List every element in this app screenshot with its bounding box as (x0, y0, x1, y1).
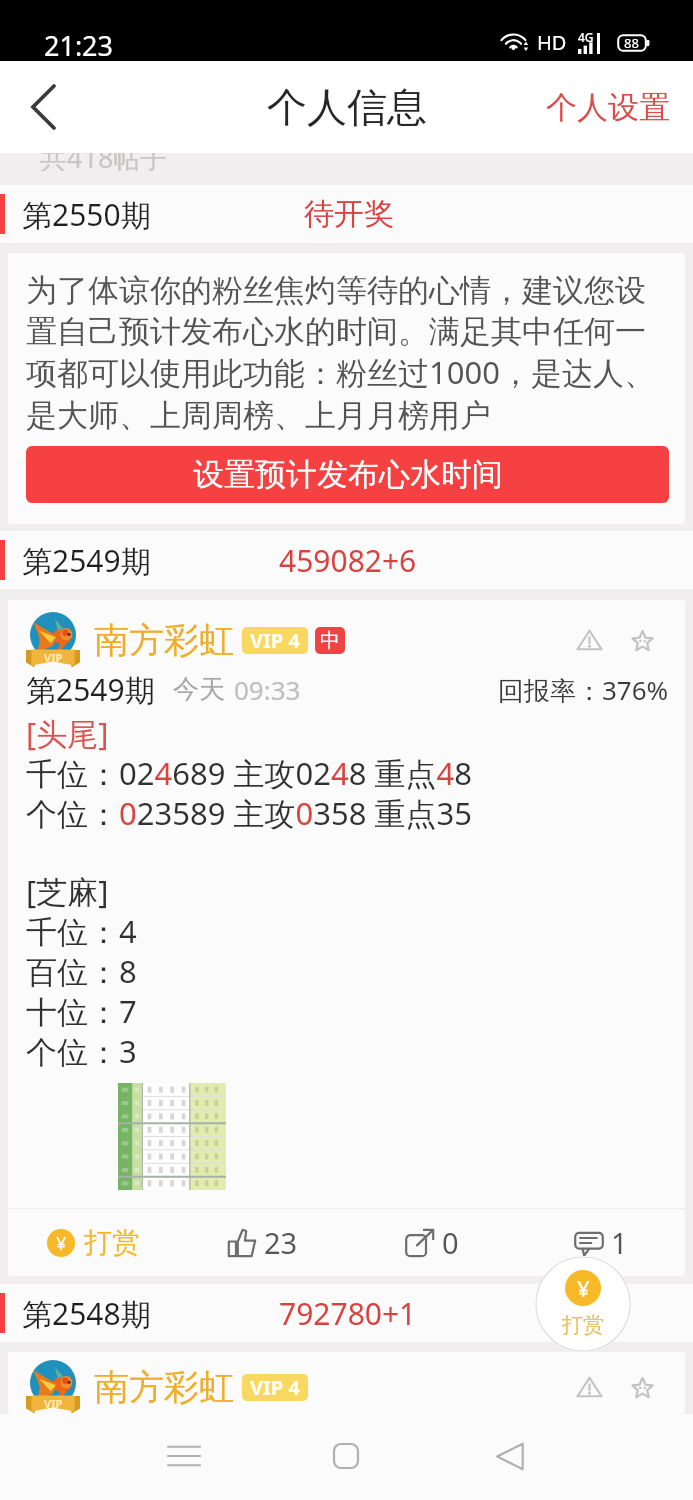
staticText: 21:23 (44, 27, 114, 64)
staticText: 第2549期 (26, 669, 155, 710)
staticText: 第2550期 (22, 194, 151, 235)
staticText: 待开奖 (304, 195, 394, 233)
staticText: 第2549期 (22, 540, 151, 581)
staticText: 打赏 (562, 1312, 604, 1338)
button[interactable]: 打赏 Reward (535, 1256, 631, 1352)
staticText: 23 (264, 1223, 298, 1262)
staticText: 为了体谅你的粉丝焦灼等待的心情，建议您设置自己预计发布心水的时间。满足其中任何一… (26, 271, 669, 435)
staticText: 个人设置 (546, 88, 670, 127)
staticText: VIP 4 (250, 1374, 300, 1401)
staticText: 个人信息 (267, 82, 427, 132)
button[interactable]: Favorite (618, 616, 666, 664)
button[interactable]: ¥ (8, 1209, 178, 1276)
staticText: VIP 4 (250, 627, 300, 654)
staticText: 88 (624, 34, 639, 52)
staticText: 1 (611, 1223, 628, 1262)
button[interactable]: Home (306, 1414, 386, 1500)
staticText: ¥ (577, 1273, 590, 1303)
staticText: 0 (442, 1223, 459, 1262)
staticText: 南方彩虹 (94, 618, 234, 662)
staticText: 打赏 (84, 1225, 140, 1260)
button[interactable]: 第2548期 (0, 1284, 693, 1342)
button[interactable]: Report (565, 616, 613, 664)
staticText: 4G (578, 29, 594, 45)
staticText: 南方彩虹 (94, 1365, 234, 1409)
button[interactable]: Report (565, 1363, 613, 1411)
staticText: 09:33 (234, 672, 301, 707)
staticText: HD (537, 29, 567, 56)
staticText: [芝麻] 千位：4 百位：8 十位：7 个位：3 (26, 870, 137, 1072)
staticText: 共418帖子 (40, 153, 168, 171)
staticText: 今天 (173, 673, 225, 706)
button[interactable]: Favorite (618, 1363, 666, 1411)
staticText: 792780+1 (279, 1293, 417, 1334)
button[interactable]: 第2550期 (0, 185, 693, 243)
button[interactable]: 1 (516, 1209, 685, 1276)
button[interactable]: 设置预计发布心水时间 (26, 446, 669, 503)
staticText: VIP (44, 1396, 63, 1411)
staticText: VIP (44, 650, 63, 665)
button[interactable]: 个人设置 (523, 61, 693, 153)
button[interactable]: 23 (178, 1209, 347, 1276)
staticText: [头尾] 千位：024689 主攻0248 重点48 个位：023589 主攻0… (26, 712, 472, 834)
staticText: ¥ (56, 1231, 67, 1256)
staticText: 设置预计发布心水时间 (193, 455, 503, 494)
staticText: 回报率：376% (498, 672, 669, 708)
staticText: 第2548期 (22, 1293, 151, 1334)
staticText: 459082+6 (279, 540, 417, 581)
button[interactable]: Back (0, 61, 86, 153)
button[interactable]: 0 (347, 1209, 516, 1276)
button[interactable]: Back (470, 1414, 550, 1500)
staticText: 中 (320, 628, 340, 653)
button[interactable]: Recents (144, 1414, 224, 1500)
button[interactable]: 第2549期 (0, 531, 693, 589)
